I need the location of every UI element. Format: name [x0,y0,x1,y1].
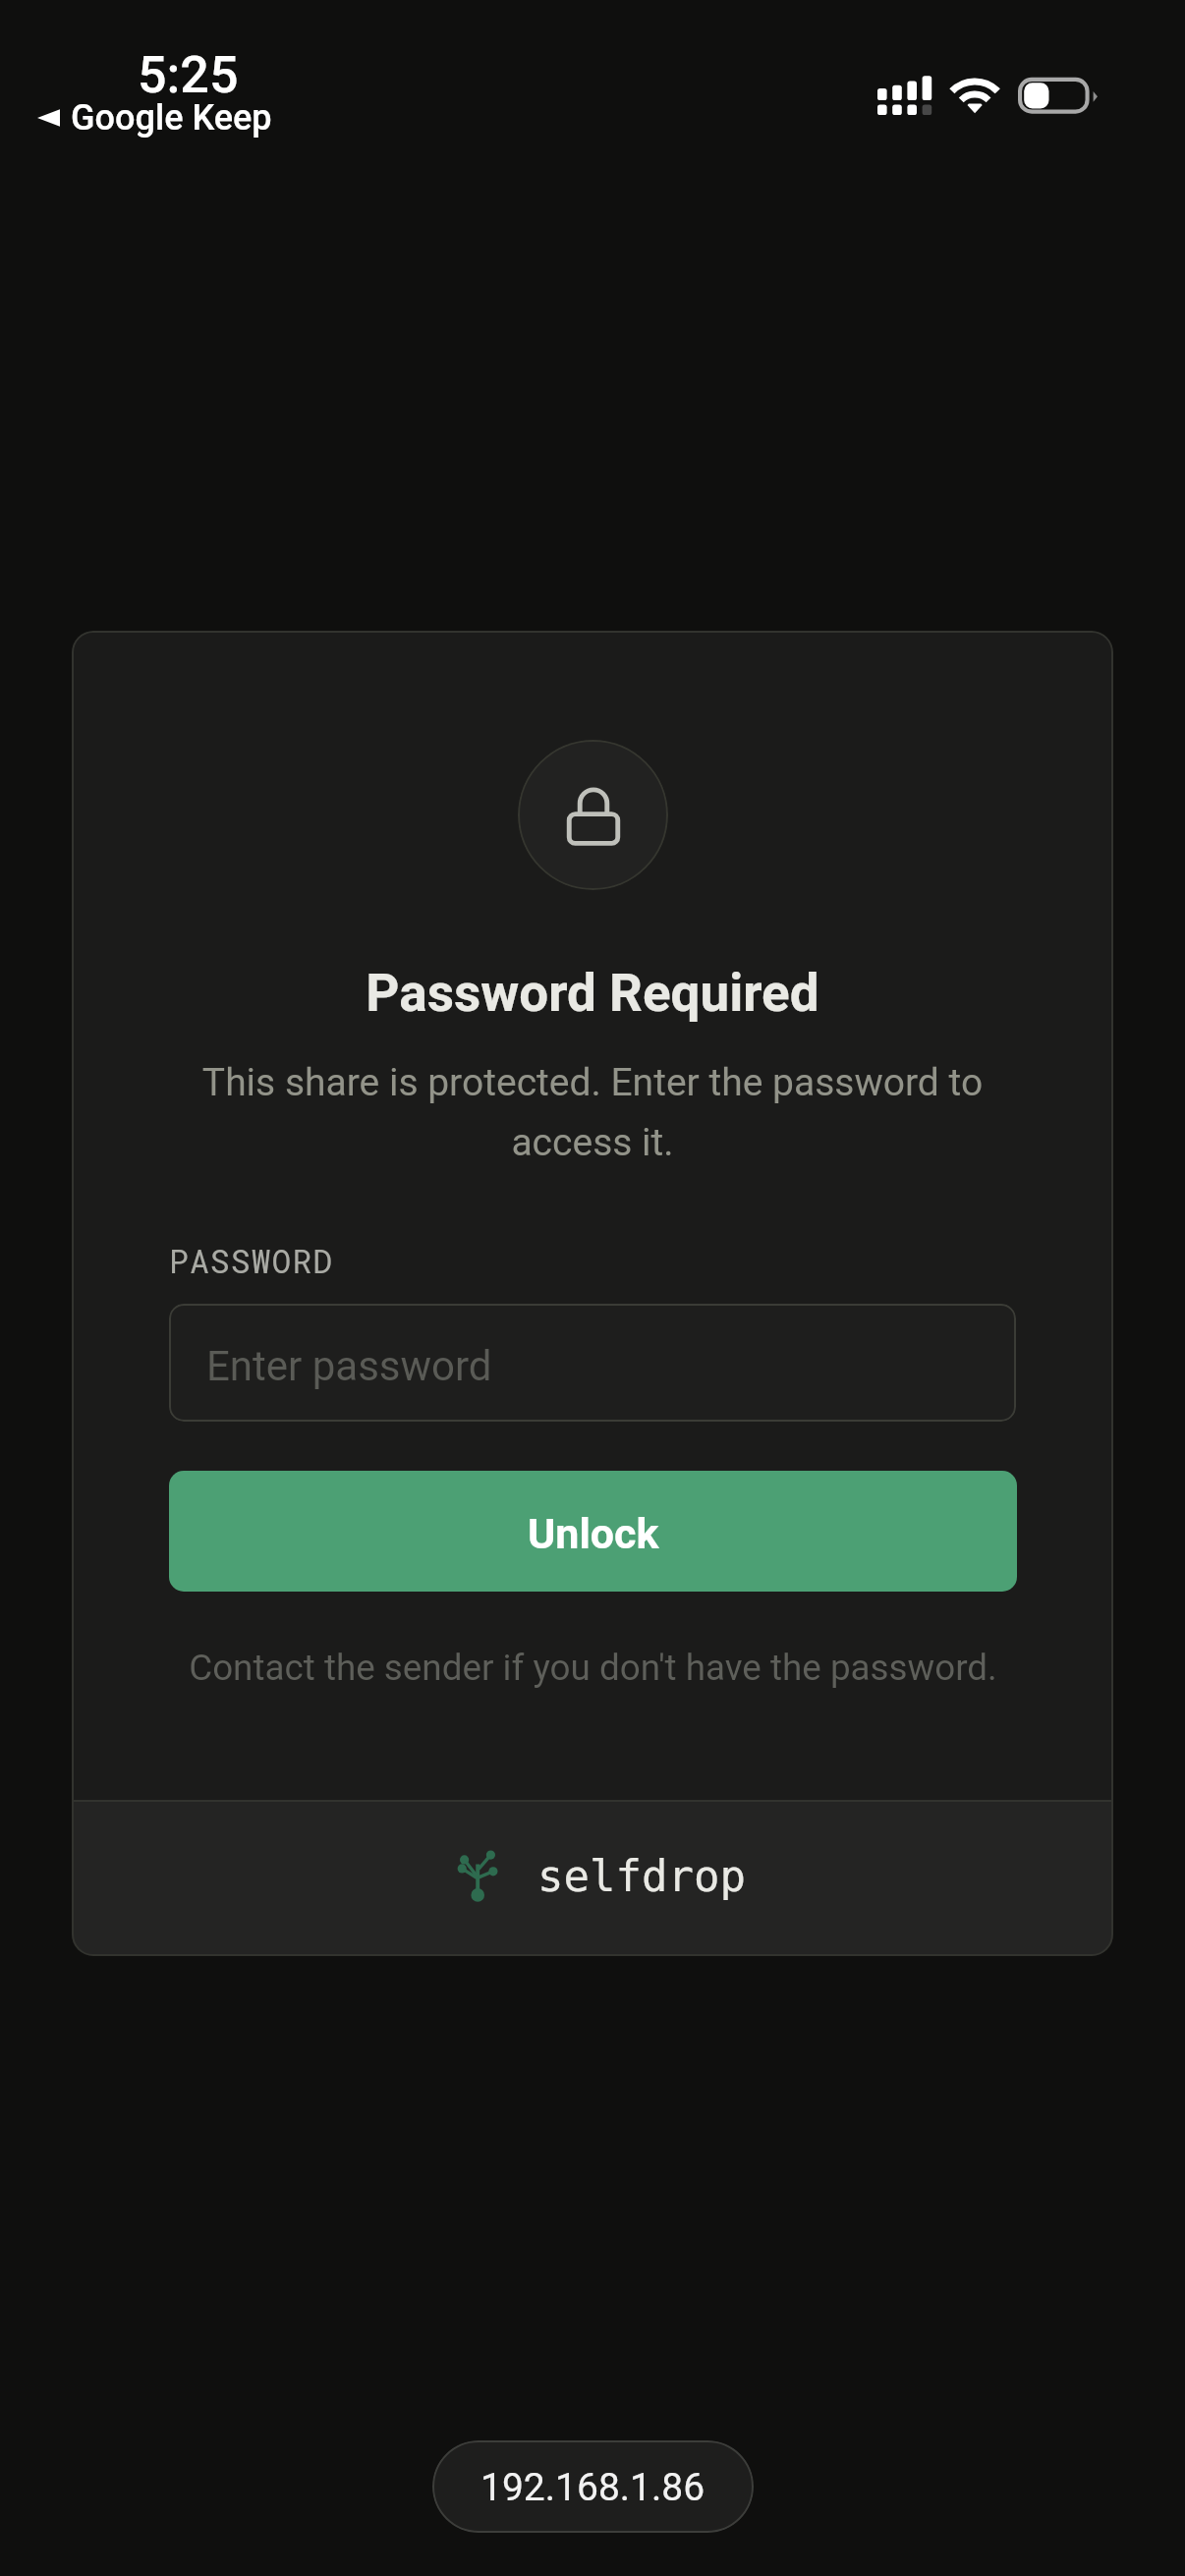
button[interactable]: Unlock [169,1471,1017,1592]
staticText: Google Keep [71,97,272,139]
staticText: Enter password [206,1342,492,1390]
button[interactable]: Back to Google Keep [37,97,272,139]
button[interactable]: Page address 192.168.1.86 [432,2440,754,2533]
staticText: This share is protected. Enter the passw… [160,1060,1025,1164]
other: Mobile signal [877,76,931,116]
other: Battery [1018,75,1100,118]
staticText: 192.168.1.86 [480,2465,705,2510]
staticText: Password Required [366,963,819,1024]
staticText: 5:25 [138,45,239,105]
staticText: PASSWORD [169,1239,334,1282]
staticText: Unlock [528,1509,659,1558]
other: Wi-Fi [950,77,1000,115]
staticText: selfdrop [537,1851,746,1901]
staticText: Contact the sender if you don't have the… [189,1647,997,1689]
button[interactable]: Enter password [169,1304,1016,1422]
